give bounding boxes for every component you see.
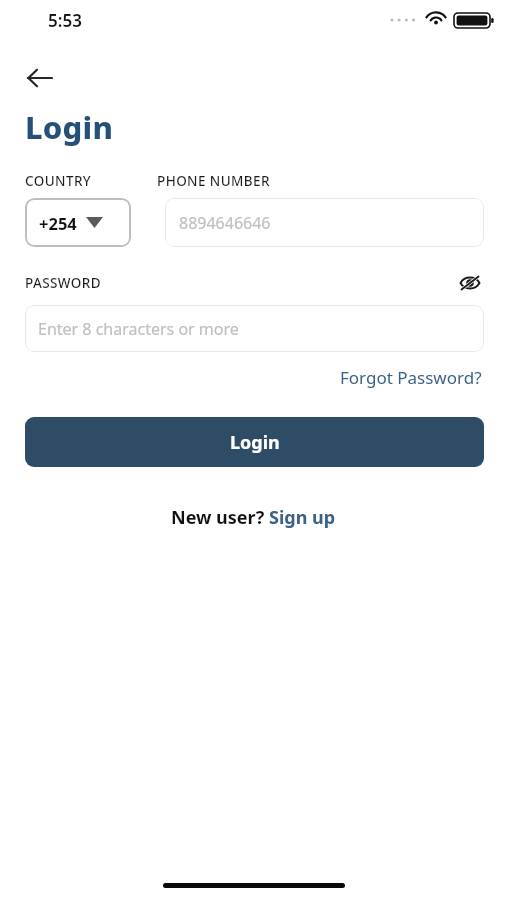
- staticText: Login: [25, 106, 114, 148]
- staticText: Enter 8 characters or more: [38, 318, 239, 340]
- staticText: 5:53: [48, 9, 82, 32]
- staticText: Forgot Password?: [340, 366, 482, 389]
- button[interactable]: +254: [25, 198, 131, 247]
- button[interactable]: Show password: [456, 269, 484, 297]
- staticText: Login: [230, 430, 280, 455]
- staticText: COUNTRY: [25, 172, 92, 190]
- staticText: Sign up: [269, 505, 336, 530]
- button[interactable]: Sign up: [269, 505, 336, 530]
- staticText: PHONE NUMBER: [157, 172, 270, 190]
- staticText: +254: [39, 212, 77, 234]
- button[interactable]: 8894646646: [165, 198, 484, 247]
- button[interactable]: Login: [25, 417, 484, 467]
- button[interactable]: Forgot Password?: [338, 364, 484, 391]
- staticText: PASSWORD: [25, 274, 102, 292]
- staticText: New user?: [171, 505, 269, 530]
- staticText: 8894646646: [179, 212, 271, 234]
- button[interactable]: Enter 8 characters or more: [25, 305, 484, 352]
- button[interactable]: Back: [16, 54, 64, 102]
